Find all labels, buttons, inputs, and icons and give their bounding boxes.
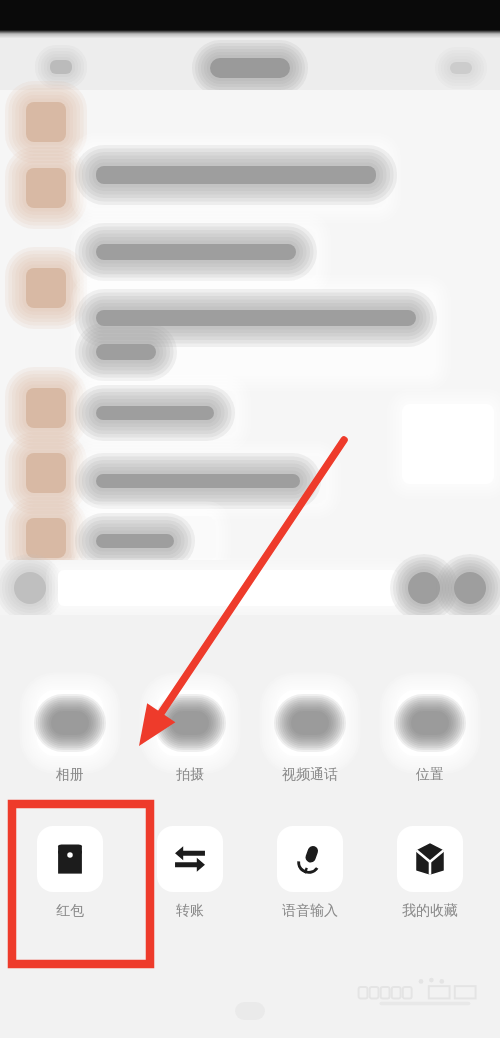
staticText: 相册 xyxy=(56,766,84,784)
button[interactable]: 相册 xyxy=(20,690,120,784)
button[interactable]: 视频通话 xyxy=(260,690,360,784)
button[interactable]: 转账 xyxy=(140,826,240,920)
staticText: 视频通话 xyxy=(282,766,338,784)
button[interactable]: 红包 xyxy=(20,826,120,920)
staticText: 红包 xyxy=(56,902,84,920)
staticText: 转账 xyxy=(176,902,204,920)
button[interactable]: 语音输入 xyxy=(260,826,360,920)
button[interactable]: 拍摄 xyxy=(140,690,240,784)
staticText: 拍摄 xyxy=(176,766,204,784)
button[interactable]: 我的收藏 xyxy=(380,826,480,920)
staticText: 我的收藏 xyxy=(402,902,458,920)
staticText: 语音输入 xyxy=(282,902,338,920)
staticText: 位置 xyxy=(416,766,444,784)
button[interactable]: 位置 xyxy=(380,690,480,784)
